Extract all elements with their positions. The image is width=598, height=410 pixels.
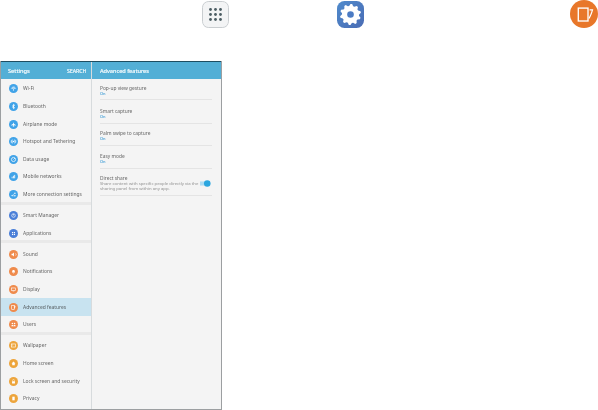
button[interactable]: Lock screen and security xyxy=(1,372,91,390)
button[interactable]: Data usage xyxy=(1,150,91,168)
staticText: Data usage xyxy=(23,156,50,163)
button[interactable]: Easy mode xyxy=(92,146,221,169)
button[interactable]: Smart capture xyxy=(92,101,221,124)
staticText: Wi-Fi xyxy=(23,85,35,92)
staticText: Notifications xyxy=(23,268,53,275)
staticText: Sound xyxy=(23,251,38,258)
button[interactable]: Bluetooth xyxy=(1,97,91,115)
button[interactable]: Home screen xyxy=(1,354,91,372)
button[interactable]: Hotspot and Tethering xyxy=(1,132,91,150)
staticText: Advanced features xyxy=(100,67,149,75)
staticText: On xyxy=(100,91,106,96)
staticText: On xyxy=(100,136,106,141)
staticText: On xyxy=(100,159,106,164)
button[interactable]: Privacy xyxy=(1,389,91,407)
staticText: Mobile networks xyxy=(23,173,62,180)
button[interactable]: Display xyxy=(1,280,91,298)
staticText: Home screen xyxy=(23,360,54,367)
button[interactable]: Pop-up view gesture xyxy=(92,79,221,100)
staticText: Share content with specific people direc… xyxy=(100,180,199,191)
staticText: Lock screen and security xyxy=(23,378,80,385)
staticText: Easy mode xyxy=(100,153,125,160)
staticText: Advanced features xyxy=(23,304,67,311)
button[interactable]: Sound xyxy=(1,245,91,263)
button[interactable]: More connection settings xyxy=(1,185,91,203)
staticText: Smart capture xyxy=(100,108,133,115)
staticText: Privacy xyxy=(23,395,40,402)
button[interactable]: Airplane mode xyxy=(1,115,91,133)
button[interactable]: Smart Manager xyxy=(1,206,91,224)
button[interactable]: Users xyxy=(1,315,91,333)
button[interactable]: Wi-Fi xyxy=(1,79,91,97)
button[interactable]: Advanced features xyxy=(570,0,598,28)
button[interactable]: Palm swipe to capture xyxy=(92,123,221,146)
staticText: Smart Manager xyxy=(23,212,60,219)
button[interactable]: Direct share xyxy=(92,168,221,196)
staticText: Wallpaper xyxy=(23,342,47,349)
button[interactable]: Applications xyxy=(1,224,91,242)
button[interactable]: Wallpaper xyxy=(1,336,91,354)
staticText: More connection settings xyxy=(23,191,82,198)
staticText: SEARCH xyxy=(67,67,87,74)
button[interactable]: Advanced features xyxy=(1,298,91,316)
staticText: Airplane mode xyxy=(23,121,58,128)
staticText: Applications xyxy=(23,230,52,237)
staticText: Pop-up view gesture xyxy=(100,85,147,92)
button[interactable]: Apps xyxy=(202,1,229,28)
staticText: Palm swipe to capture xyxy=(100,130,151,137)
staticText: Settings xyxy=(8,67,30,75)
staticText: Direct share xyxy=(100,175,128,182)
staticText: Hotspot and Tethering xyxy=(23,138,76,145)
staticText: On xyxy=(100,114,106,119)
button[interactable]: Settings xyxy=(337,1,364,28)
staticText: Display xyxy=(23,286,40,293)
button[interactable]: Notifications xyxy=(1,262,91,280)
staticText: Users xyxy=(23,321,37,328)
button[interactable]: Mobile networks xyxy=(1,167,91,185)
staticText: Bluetooth xyxy=(23,103,46,110)
